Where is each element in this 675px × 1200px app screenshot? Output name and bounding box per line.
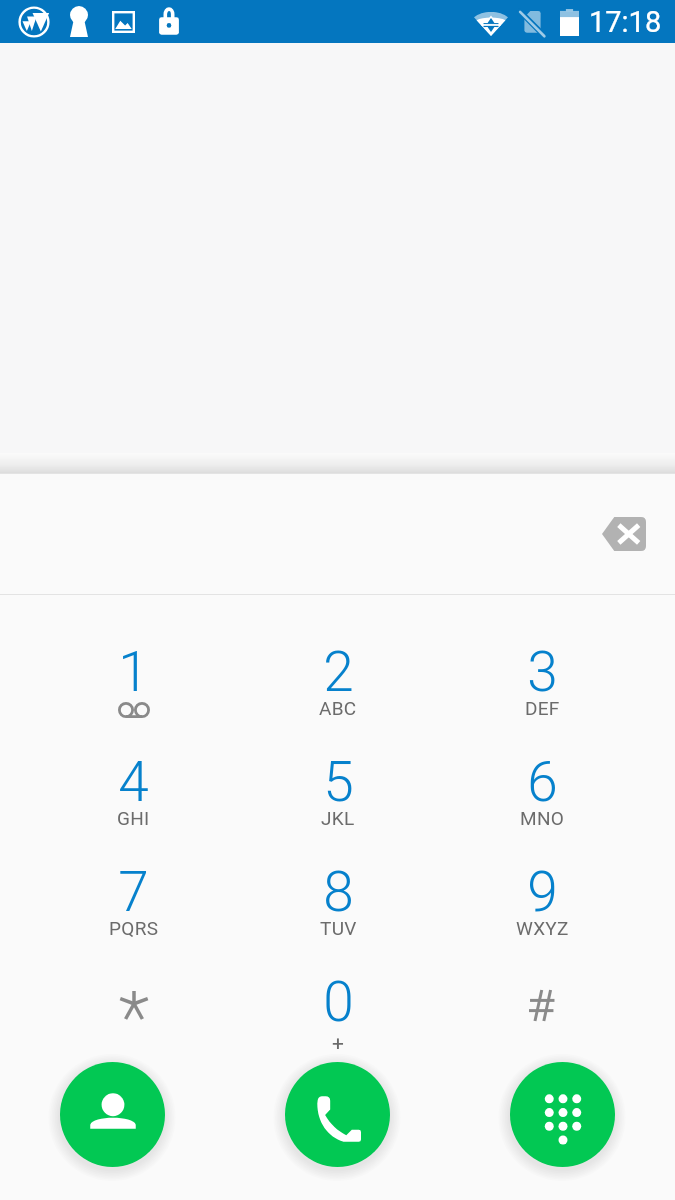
staticText: 0	[323, 970, 354, 1034]
button[interactable]	[440, 925, 644, 1035]
button[interactable]: Call	[285, 1062, 390, 1167]
staticText: 5	[323, 750, 354, 814]
staticText: 3	[527, 640, 558, 704]
staticText: 4	[118, 750, 149, 814]
button[interactable]: 4	[31, 705, 236, 815]
staticText: 17:18	[589, 5, 662, 39]
staticText: DEF	[525, 697, 560, 719]
button[interactable]: 6	[440, 705, 644, 815]
staticText: 7	[118, 860, 149, 924]
staticText: +	[332, 1031, 345, 1056]
button[interactable]	[31, 925, 236, 1035]
staticText: GHI	[117, 807, 150, 829]
button[interactable]: Backspace	[593, 508, 653, 560]
staticText: 8	[323, 860, 354, 924]
staticText: WXYZ	[516, 917, 569, 939]
button[interactable]: 2	[236, 595, 440, 705]
staticText: ABC	[319, 697, 357, 719]
button[interactable]: 8	[236, 815, 440, 925]
button[interactable]: 3	[440, 595, 644, 705]
staticText: MNO	[520, 807, 565, 829]
button[interactable]: 9	[440, 815, 644, 925]
staticText: TUV	[320, 917, 357, 939]
staticText: 1	[118, 640, 149, 704]
staticText: 2	[323, 640, 354, 704]
button[interactable]: Dialpad	[510, 1062, 615, 1167]
button[interactable]: Contacts	[60, 1062, 165, 1167]
button[interactable]: 0	[236, 925, 440, 1035]
button[interactable]: 7	[31, 815, 236, 925]
staticText: JKL	[321, 807, 355, 829]
staticText: 6	[527, 750, 558, 814]
button[interactable]: 1	[31, 595, 236, 705]
staticText: 9	[527, 860, 558, 924]
staticText: PQRS	[109, 917, 159, 939]
button[interactable]: 5	[236, 705, 440, 815]
